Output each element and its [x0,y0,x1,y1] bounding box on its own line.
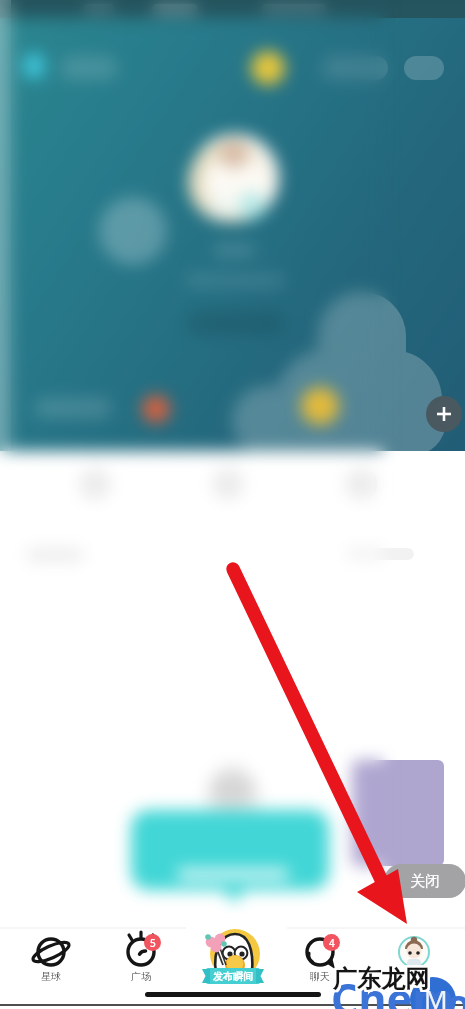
staticText: 关闭 [410,872,440,891]
staticText: 广东龙网 [333,966,429,996]
staticText: 广东龙网 [334,964,430,994]
staticText: 广东龙网 [333,964,429,994]
button[interactable]: 我的 [369,933,459,993]
staticText: 广场 [131,970,151,983]
staticText: 广东龙网 [331,963,427,993]
staticText: 广东龙网 [334,962,430,992]
staticText: 广东龙网 [332,964,428,994]
button[interactable]: 关闭 [384,864,465,898]
staticText: Chem [331,969,455,1009]
staticText: 广东龙网 [331,962,427,992]
staticText: M [424,981,448,1009]
staticText: 4 [329,936,335,950]
staticText: 发布瞬间 [213,970,253,983]
staticText: 广东龙网 [333,965,429,995]
staticText: 广东龙网 [332,965,428,995]
staticText: 广东龙网 [335,963,431,993]
button[interactable]: 4 [275,933,365,993]
staticText: 广东龙网 [332,963,428,993]
staticText: 广东龙网 [335,964,431,994]
staticText: 广东龙网 [334,966,430,996]
staticText: 星球 [41,970,61,983]
staticText: 广东龙网 [335,965,431,995]
staticText: 广东龙网 [335,966,431,996]
button[interactable]: 5 [96,933,186,993]
button[interactable]: 星球 [6,933,96,993]
staticText: 广东龙网 [333,962,429,992]
staticText: 广东龙网 [331,964,427,994]
staticText: 广东龙网 [332,962,428,992]
staticText: 5 [150,936,156,950]
staticText: 广东龙网 [335,962,431,992]
staticText: o [446,975,465,1009]
staticText: 聊天 [310,970,330,983]
staticText: 广东龙网 [331,965,427,995]
staticText: 广东龙网 [334,965,430,995]
staticText: 广东龙网 [332,966,428,996]
button[interactable]: 发布瞬间 [196,931,270,987]
staticText: 广东龙网 [334,963,430,993]
staticText: 广东龙网 [331,966,427,996]
staticText: 广东龙网 [333,963,429,993]
